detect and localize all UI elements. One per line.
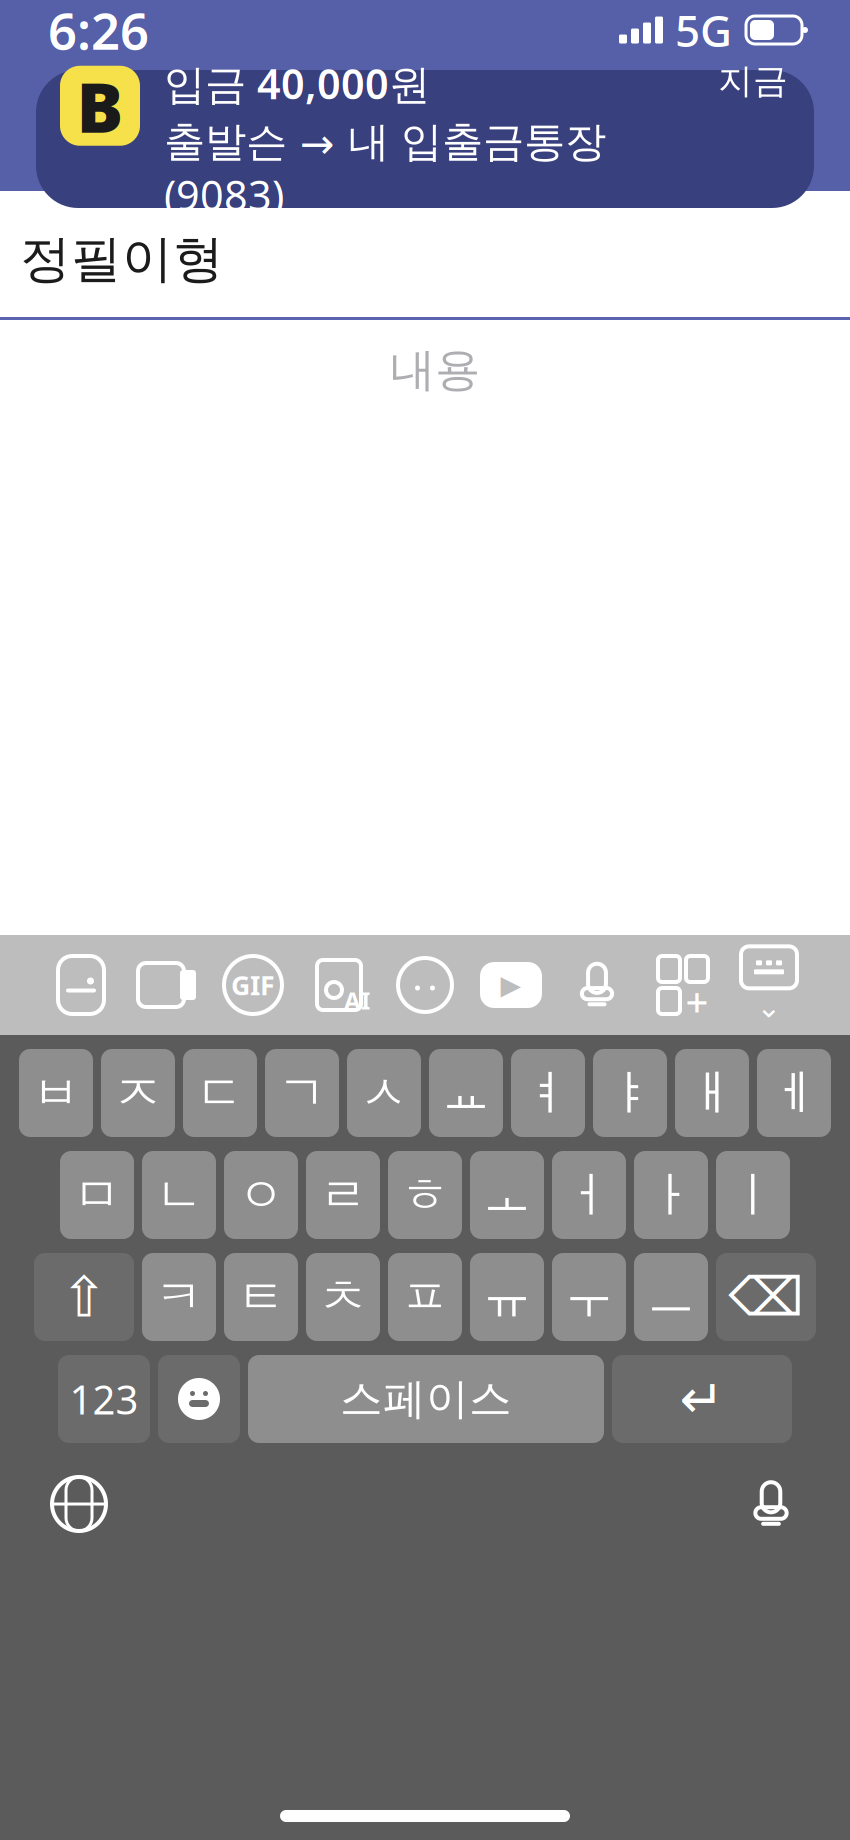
button[interactable]: ㄹ [306,1151,380,1239]
button[interactable]: ㄷ [183,1049,257,1137]
button[interactable]: ㅏ [634,1151,708,1239]
staticText: ㅋ [155,1267,203,1326]
staticText: 5G [675,1,732,59]
button[interactable]: Dictate [726,1465,816,1543]
button[interactable]: ㅅ [347,1049,421,1137]
staticText: B [76,60,123,152]
button[interactable]: ㅣ [716,1151,790,1239]
staticText: ㅜ [565,1267,613,1326]
button[interactable]: ㅂ [19,1049,93,1137]
button[interactable]: ㅎ [388,1151,462,1239]
staticText: ㅌ [237,1267,285,1326]
button[interactable]: Switch keyboard [34,1465,124,1543]
staticText: 출발슨 → 내 입출금통장(9083) [164,117,606,222]
button[interactable]: ㅑ [593,1049,667,1137]
staticText: ㅈ [114,1063,162,1122]
staticText: ㅅ [360,1063,408,1122]
button[interactable]: ㅡ [634,1253,708,1341]
staticText: ㅏ [647,1165,695,1224]
button[interactable]: ㅁ [60,1151,134,1239]
staticText: ㅛ [442,1063,490,1122]
staticText: 스페이스 [340,1373,512,1425]
staticText: + [685,974,708,1027]
staticText: ㅣ [729,1165,777,1224]
button[interactable]: AI drawing [296,937,382,1033]
button[interactable]: Return [612,1355,792,1443]
staticText: ㅔ [770,1063,818,1122]
button[interactable]: ㅔ [757,1049,831,1137]
staticText: ㄷ [196,1063,244,1122]
button[interactable]: 스페이스 [248,1355,604,1443]
staticText: ㅊ [319,1267,367,1326]
staticText: ⌫ [728,1267,803,1327]
button[interactable]: ㅠ [470,1253,544,1341]
button[interactable]: Hide keyboard [726,937,812,1033]
staticText: 내용 [390,342,480,398]
staticText: ㅓ [565,1165,613,1224]
button[interactable]: ㅛ [429,1049,503,1137]
staticText: ↵ [679,1369,724,1429]
button[interactable]: ㅈ [101,1049,175,1137]
staticText: ㅂ [32,1063,80,1122]
button[interactable]: Voice [554,937,640,1033]
staticText: ▶ [500,970,521,1000]
staticText: ㄴ [155,1165,203,1224]
staticText: 입금 40,000원 [164,56,430,111]
staticText: GIF [231,967,275,1003]
staticText: ㅡ [647,1267,695,1326]
staticText: ㄹ [319,1165,367,1224]
button[interactable]: More apps [640,937,726,1033]
staticText: ㅕ [524,1063,572,1122]
button[interactable]: ㅊ [306,1253,380,1341]
staticText: 123 [69,1372,138,1425]
staticText: ㅍ [401,1267,449,1326]
button[interactable]: Delete [716,1253,816,1341]
button[interactable]: ㅌ [224,1253,298,1341]
button[interactable]: ㅐ [675,1049,749,1137]
button[interactable]: ㅜ [552,1253,626,1341]
button[interactable]: Emoji [158,1355,240,1443]
button[interactable]: ㅕ [511,1049,585,1137]
staticText: ⌄ [756,990,781,1024]
button[interactable]: GIF [210,937,296,1033]
staticText: ㅠ [483,1267,531,1326]
button[interactable]: ㄱ [265,1049,339,1137]
button[interactable]: Stickers [382,937,468,1033]
button[interactable]: YouTube [468,937,554,1033]
staticText: ㅇ [237,1165,285,1224]
button[interactable]: Photos [38,937,124,1033]
button[interactable]: ㅍ [388,1253,462,1341]
button[interactable]: Video [124,937,210,1033]
staticText: ㅑ [606,1063,654,1122]
button[interactable]: 123 [58,1355,150,1443]
staticText: AI [344,984,370,1016]
staticText: ㄱ [278,1063,326,1122]
staticText: ㅎ [401,1165,449,1224]
staticText: ⇧ [60,1265,107,1329]
button[interactable]: ㅇ [224,1151,298,1239]
staticText: ㅐ [688,1063,736,1122]
button[interactable]: ㅗ [470,1151,544,1239]
button[interactable]: ㅋ [142,1253,216,1341]
staticText: 6:26 [48,0,149,64]
button[interactable]: Shift [34,1253,134,1341]
button[interactable]: ㅓ [552,1151,626,1239]
staticText: ㅗ [483,1165,531,1224]
staticText: 지금 [718,60,788,102]
staticText: 정필이형 [20,228,224,290]
button[interactable]: ㄴ [142,1151,216,1239]
button[interactable]: B [36,70,814,208]
staticText: ㅁ [73,1165,121,1224]
